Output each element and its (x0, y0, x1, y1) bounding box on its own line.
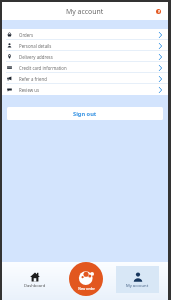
staticText: Credit card information (19, 65, 67, 71)
staticText: Review us (19, 87, 40, 93)
staticText: Sign out (73, 110, 97, 118)
staticText: My account (66, 7, 104, 16)
staticText: Personal details (19, 43, 52, 49)
staticText: Orders (19, 32, 34, 38)
staticText: New order (78, 286, 95, 291)
button[interactable]: Delivery address (2, 51, 168, 62)
button[interactable]: My account (116, 266, 159, 293)
button[interactable]: Refer a friend (2, 73, 168, 84)
button[interactable]: Personal details (2, 40, 168, 51)
button[interactable]: Credit card information (2, 62, 168, 73)
staticText: Dashboard (24, 283, 46, 289)
staticText: My account (126, 283, 149, 289)
staticText: Refer a friend (19, 76, 47, 82)
button[interactable]: Sign out (7, 107, 163, 120)
button[interactable]: Review us (2, 84, 168, 95)
button[interactable]: Orders (2, 29, 168, 40)
button[interactable]: New order (69, 262, 103, 296)
staticText: ? (158, 9, 160, 14)
button[interactable]: Dashboard (13, 266, 56, 293)
staticText: Delivery address (19, 54, 53, 60)
button[interactable]: Help (153, 6, 164, 17)
